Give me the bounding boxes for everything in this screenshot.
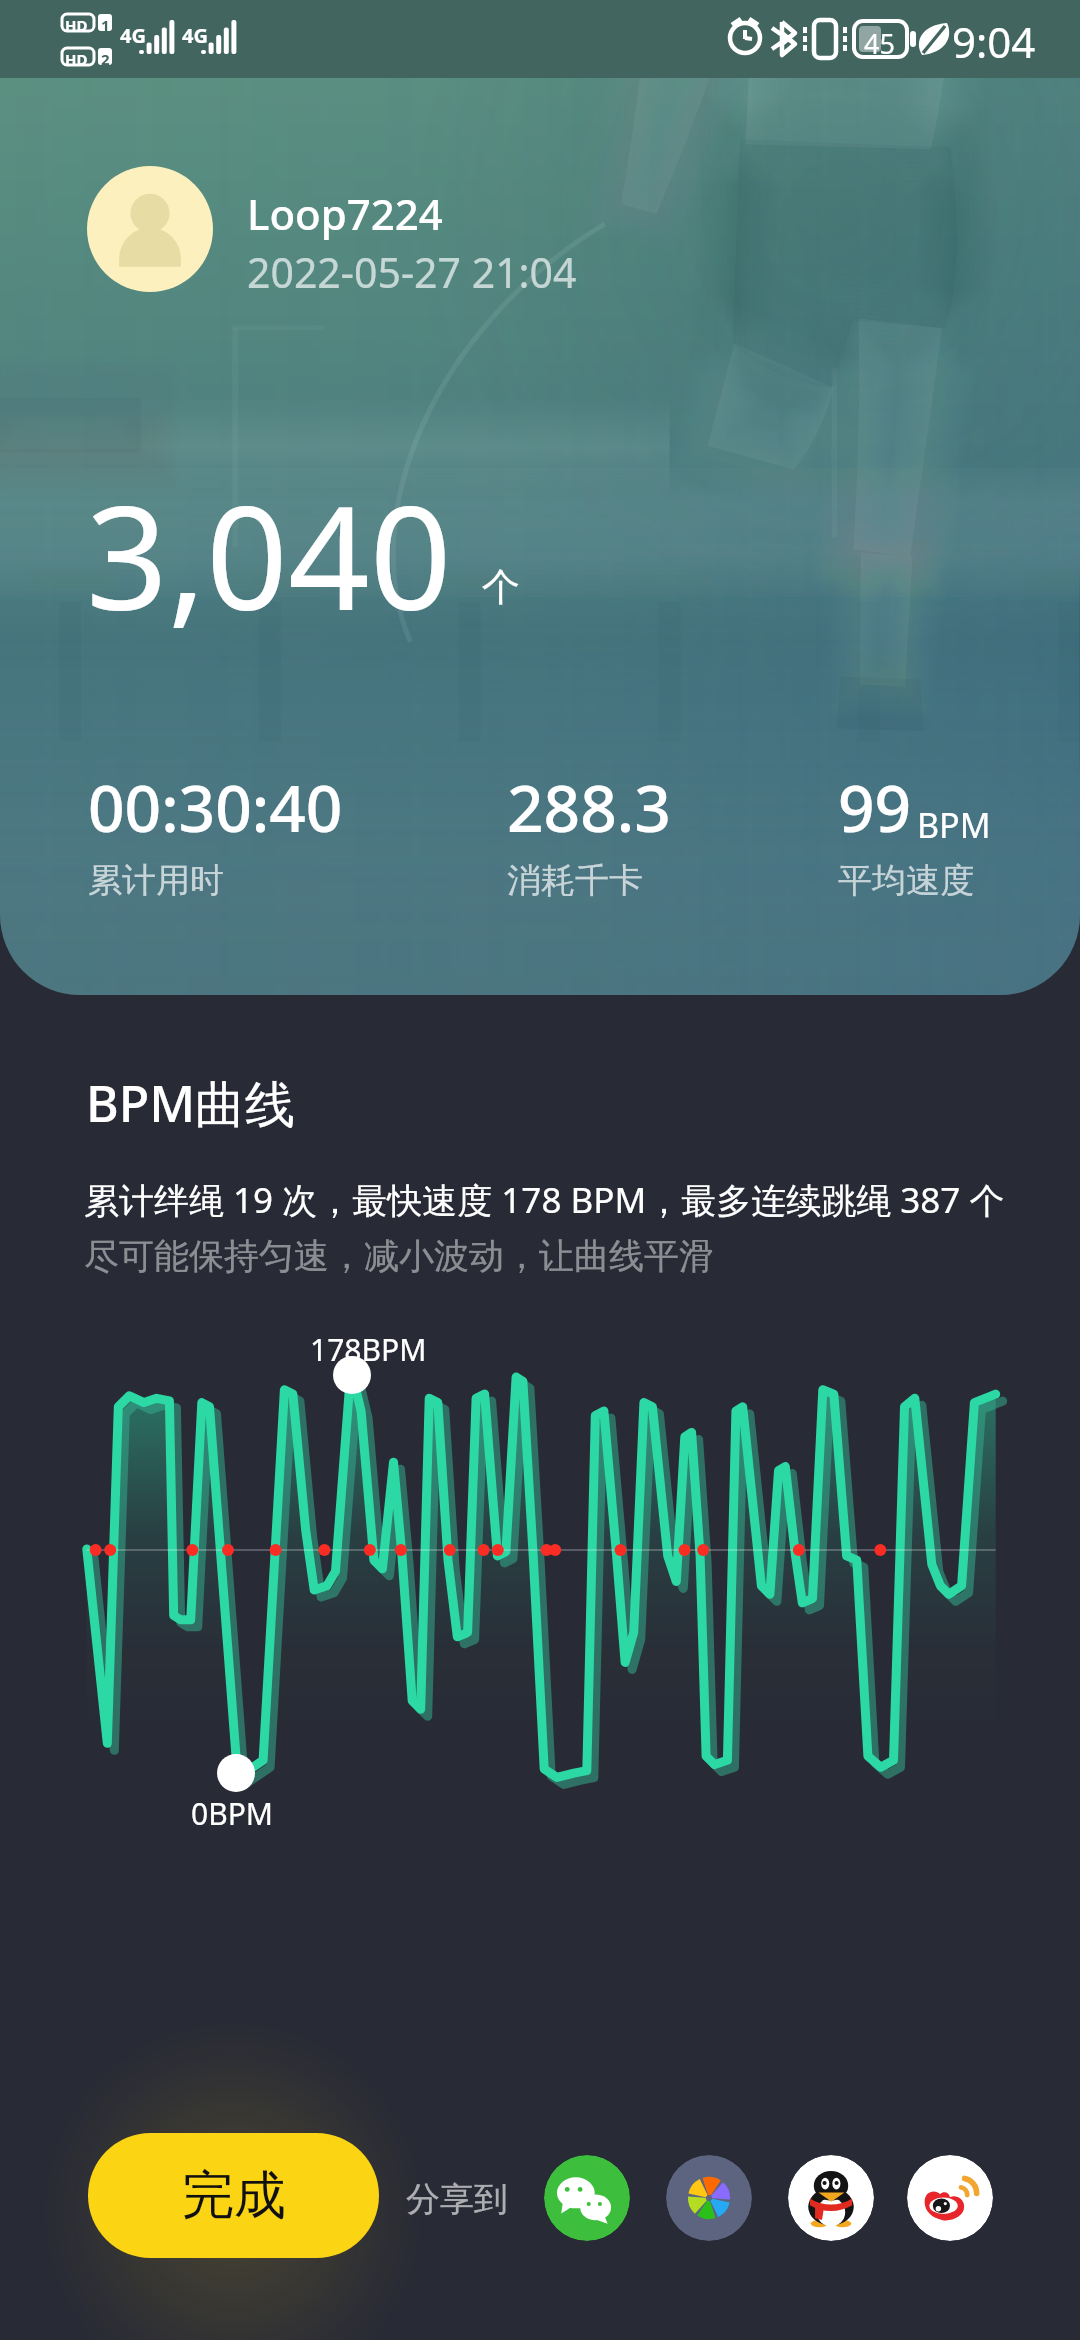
staticText: 3,040: [86, 457, 452, 652]
button[interactable]: Share to WeChat: [544, 2155, 630, 2241]
staticText: HD: [65, 49, 88, 69]
staticText: HD: [65, 15, 88, 35]
button[interactable]: Share to Weibo: [907, 2155, 993, 2241]
staticText: Loop7224: [247, 185, 443, 242]
button[interactable]: Loop7224: [87, 166, 577, 292]
staticText: 00:30:40: [88, 764, 343, 851]
button[interactable]: Share to QQ: [788, 2155, 874, 2241]
staticText: 个: [482, 563, 520, 611]
staticText: 4G: [182, 22, 208, 49]
staticText: 0BPM: [191, 1793, 274, 1834]
staticText: 4G: [120, 22, 146, 49]
staticText: 99: [838, 764, 912, 851]
staticText: 2022-05-27 21:04: [247, 244, 577, 300]
button[interactable]: 完成: [88, 2133, 379, 2258]
staticText: 288.3: [507, 764, 671, 851]
staticText: 9:04: [952, 13, 1036, 70]
staticText: 完成: [182, 2163, 286, 2229]
staticText: 尽可能保持匀速，减小波动，让曲线平滑: [84, 1234, 714, 1278]
staticText: BPM曲线: [86, 1069, 296, 1137]
staticText: 分享到: [406, 2178, 508, 2221]
staticText: 178BPM: [310, 1329, 427, 1370]
staticText: 1: [101, 15, 110, 35]
staticText: 累计用时: [88, 859, 224, 902]
staticText: 45: [864, 25, 895, 62]
button[interactable]: Share to Gallery: [666, 2155, 752, 2241]
staticText: 累计绊绳 19 次，最快速度 178 BPM，最多连续跳绳 387 个: [84, 1176, 1005, 1224]
staticText: 2: [101, 49, 110, 69]
staticText: BPM: [917, 802, 991, 848]
staticText: 消耗千卡: [507, 859, 643, 902]
staticText: 平均速度: [838, 859, 974, 902]
